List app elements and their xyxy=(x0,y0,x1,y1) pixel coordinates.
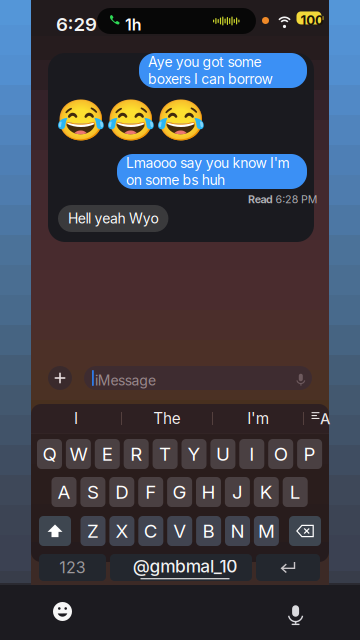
staticText: R xyxy=(130,443,142,465)
staticText: Read xyxy=(248,193,273,206)
button[interactable]: Message field xyxy=(84,366,312,390)
staticText: V xyxy=(173,520,186,542)
staticText: S xyxy=(87,481,99,503)
staticText: 123 xyxy=(59,558,86,577)
staticText: 6:28 PM xyxy=(276,193,318,206)
button[interactable]: L xyxy=(283,477,308,507)
staticText: A xyxy=(57,481,70,503)
button[interactable]: C xyxy=(138,516,163,546)
staticText: Lmaooo say you know I'm on some bs huh xyxy=(126,155,289,188)
button[interactable]: Q xyxy=(37,439,62,469)
button[interactable]: J xyxy=(225,477,250,507)
staticText: W xyxy=(69,443,87,465)
staticText: 6:29 xyxy=(56,13,97,36)
staticText: The xyxy=(153,409,181,428)
button[interactable]: P xyxy=(297,439,322,469)
staticText: A xyxy=(320,410,330,428)
button[interactable]: K xyxy=(254,477,279,507)
staticText: Q xyxy=(42,443,56,465)
button[interactable]: Space xyxy=(110,554,252,581)
staticText: Aye you got some boxers I can borrow xyxy=(148,54,273,87)
staticText: U xyxy=(216,443,230,465)
button[interactable]: G xyxy=(167,477,192,507)
staticText: P xyxy=(304,443,316,465)
button[interactable]: I xyxy=(31,404,121,433)
button[interactable]: B xyxy=(196,516,221,546)
button[interactable]: N xyxy=(225,516,250,546)
staticText: D xyxy=(115,481,128,503)
staticText: 1h xyxy=(125,15,142,34)
staticText: T xyxy=(159,443,171,465)
button[interactable]: H xyxy=(196,477,221,507)
button[interactable]: Emoji xyxy=(53,602,72,621)
button[interactable]: The xyxy=(122,404,212,433)
button[interactable]: S xyxy=(80,477,105,507)
button[interactable]: Return xyxy=(256,554,320,581)
button[interactable]: I'm xyxy=(213,404,303,433)
button[interactable]: Shift xyxy=(39,516,71,546)
staticText: Z xyxy=(87,520,99,542)
button[interactable]: D xyxy=(109,477,134,507)
button[interactable]: E xyxy=(95,439,120,469)
button[interactable]: F xyxy=(138,477,163,507)
staticText: @gmbmal_10 xyxy=(133,556,237,577)
staticText: E xyxy=(102,443,113,465)
button[interactable]: Switch keyboard xyxy=(304,404,329,433)
button[interactable]: Add attachment xyxy=(48,366,72,390)
staticText: G xyxy=(173,481,187,503)
staticText: O xyxy=(274,443,288,465)
staticText: I xyxy=(74,409,78,428)
button[interactable]: A xyxy=(51,477,76,507)
button[interactable]: 123 xyxy=(39,554,106,581)
button[interactable]: V xyxy=(167,516,192,546)
staticText: B xyxy=(203,520,215,542)
staticText: I xyxy=(249,443,254,465)
button[interactable]: Z xyxy=(80,516,105,546)
staticText: L xyxy=(290,481,301,503)
button[interactable]: O xyxy=(268,439,293,469)
staticText: F xyxy=(145,481,156,503)
button[interactable]: X xyxy=(109,516,134,546)
staticText: Y xyxy=(187,443,200,465)
button[interactable]: R xyxy=(124,439,149,469)
staticText: I'm xyxy=(247,409,269,428)
staticText: C xyxy=(144,520,158,542)
staticText: iMessage xyxy=(95,372,156,389)
staticText: 😂😂😂 xyxy=(56,97,206,143)
staticText: N xyxy=(230,520,244,542)
button[interactable]: M xyxy=(254,516,279,546)
staticText: 100 xyxy=(300,12,324,28)
staticText: M xyxy=(258,520,275,542)
staticText: J xyxy=(232,481,243,503)
button[interactable]: W xyxy=(66,439,91,469)
button[interactable]: Delete xyxy=(289,516,321,546)
button[interactable]: Dictate xyxy=(286,601,303,621)
staticText: H xyxy=(201,481,215,503)
button[interactable]: I xyxy=(239,439,264,469)
staticText: X xyxy=(115,520,128,542)
staticText: K xyxy=(260,481,273,503)
button[interactable]: T xyxy=(153,439,178,469)
button[interactable]: Y xyxy=(181,439,206,469)
button[interactable]: U xyxy=(210,439,235,469)
staticText: Hell yeah Wyo xyxy=(68,210,158,227)
